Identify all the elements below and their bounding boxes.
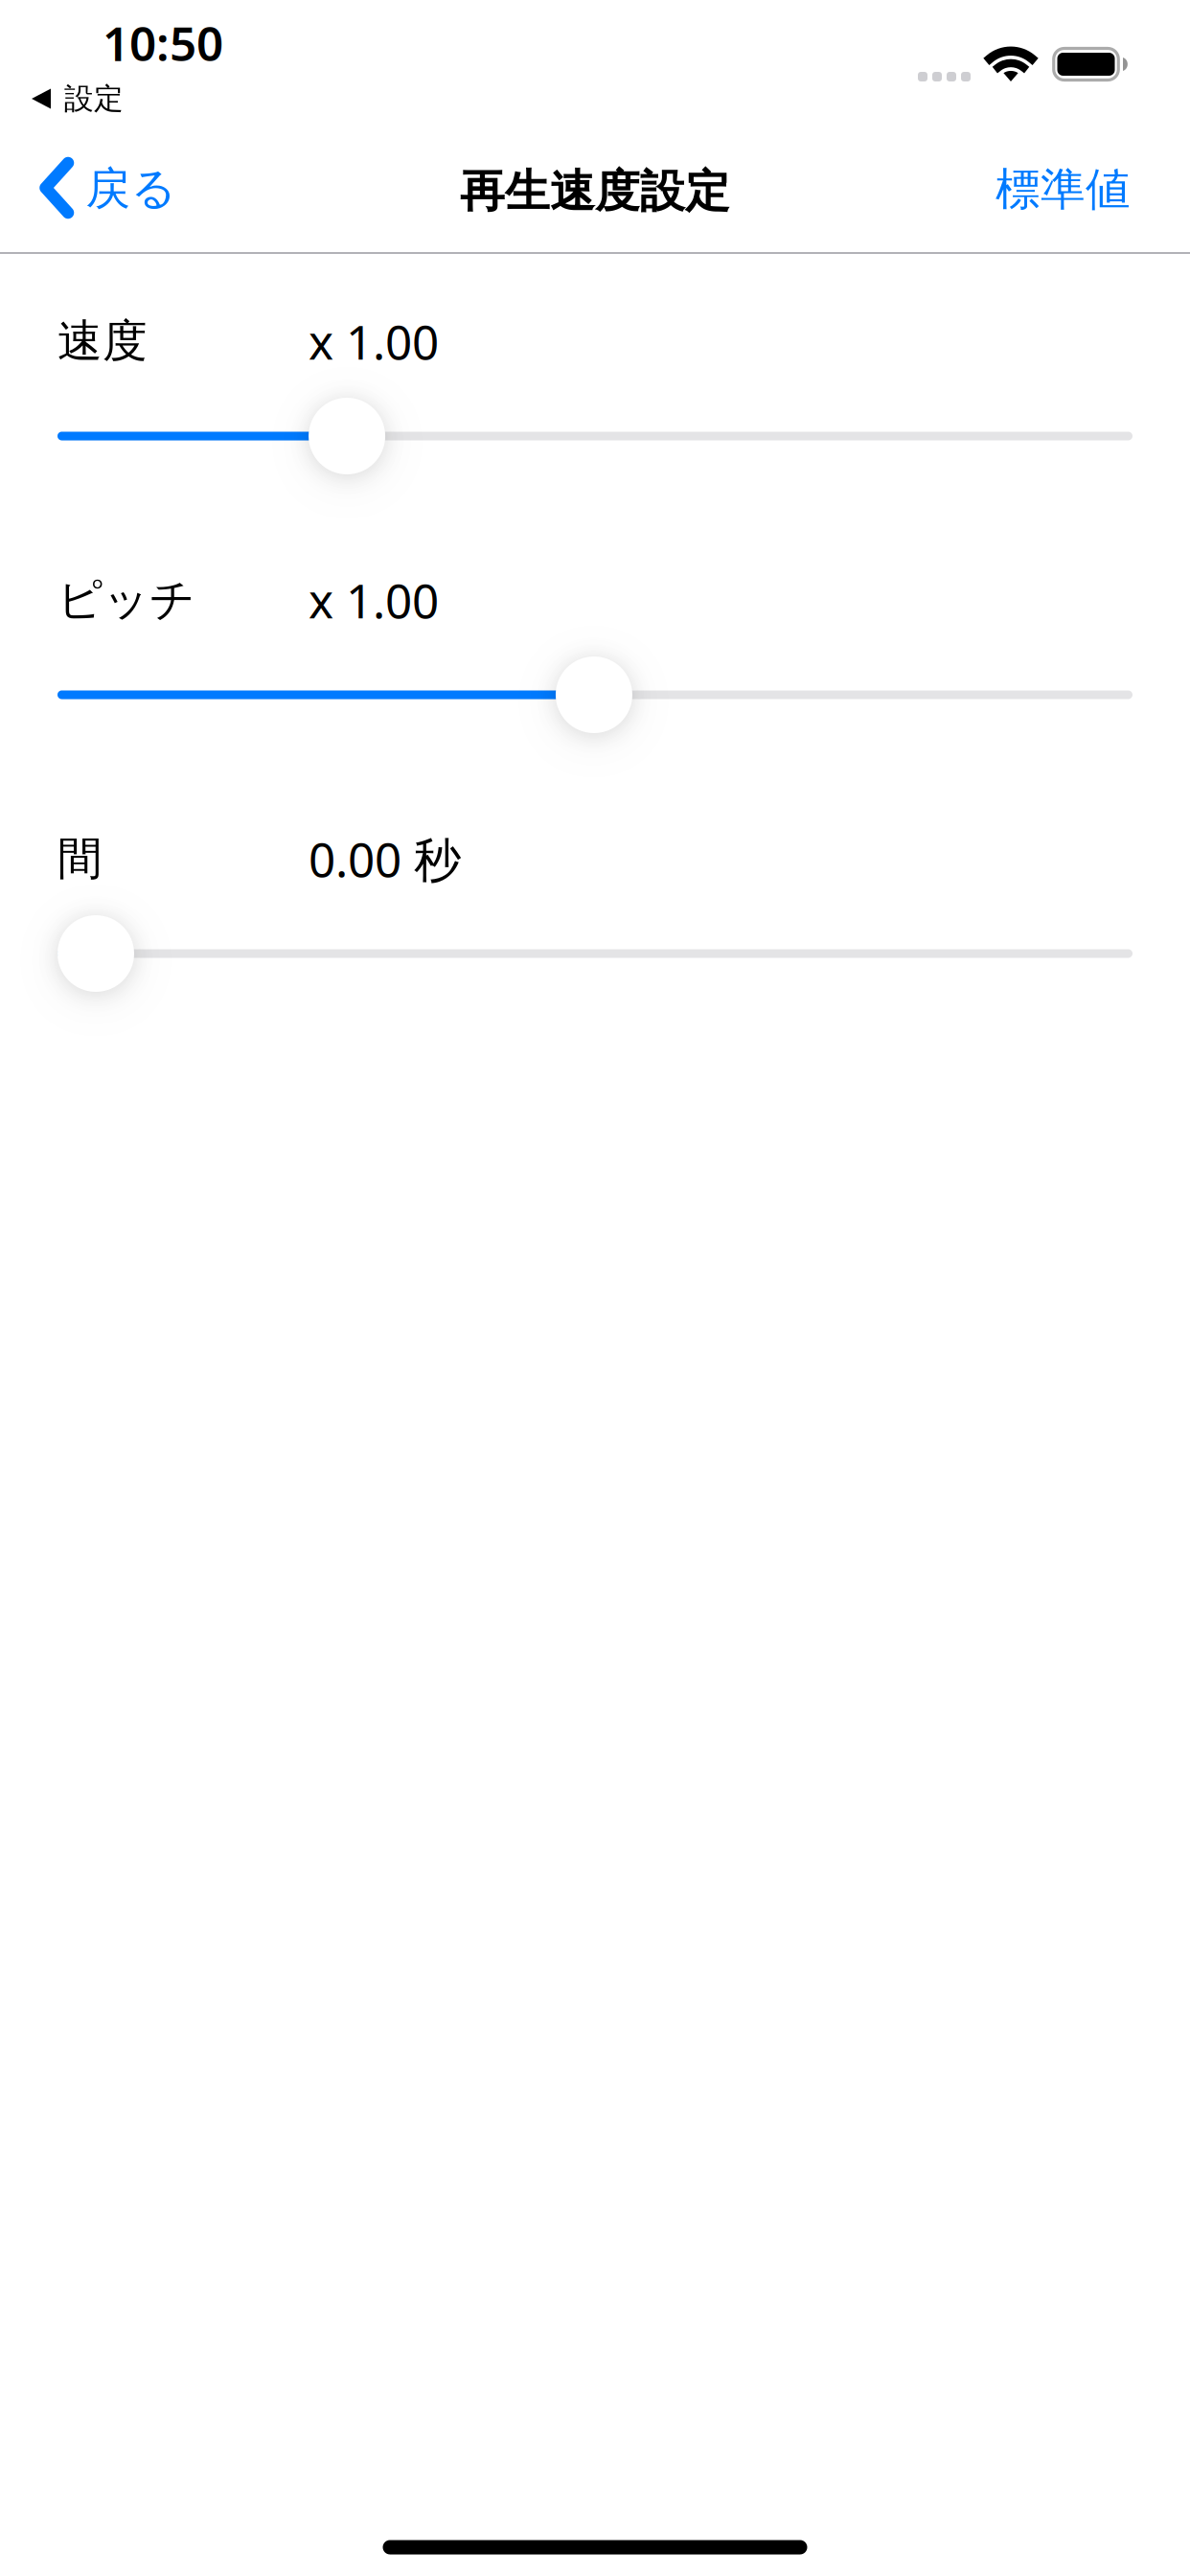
staticText: 設定 <box>64 81 124 117</box>
button[interactable]: 標準値 <box>973 137 1154 242</box>
staticText: 0.00 秒 <box>309 827 461 890</box>
staticText: x 1.00 <box>309 568 439 631</box>
staticText: 10:50 <box>103 11 223 74</box>
button[interactable]: 速度 <box>309 398 385 474</box>
staticText: x 1.00 <box>309 310 439 373</box>
button[interactable]: ピッチ <box>556 656 632 733</box>
button[interactable]: 間 <box>57 915 134 992</box>
staticText: 間 <box>57 831 103 886</box>
staticText: 標準値 <box>995 162 1131 217</box>
staticText: 再生速度設定 <box>460 164 730 219</box>
staticText: 速度 <box>57 314 148 369</box>
staticText: ピッチ <box>57 572 195 627</box>
button[interactable]: 戻る <box>0 140 196 236</box>
staticText: 戻る <box>86 161 177 216</box>
